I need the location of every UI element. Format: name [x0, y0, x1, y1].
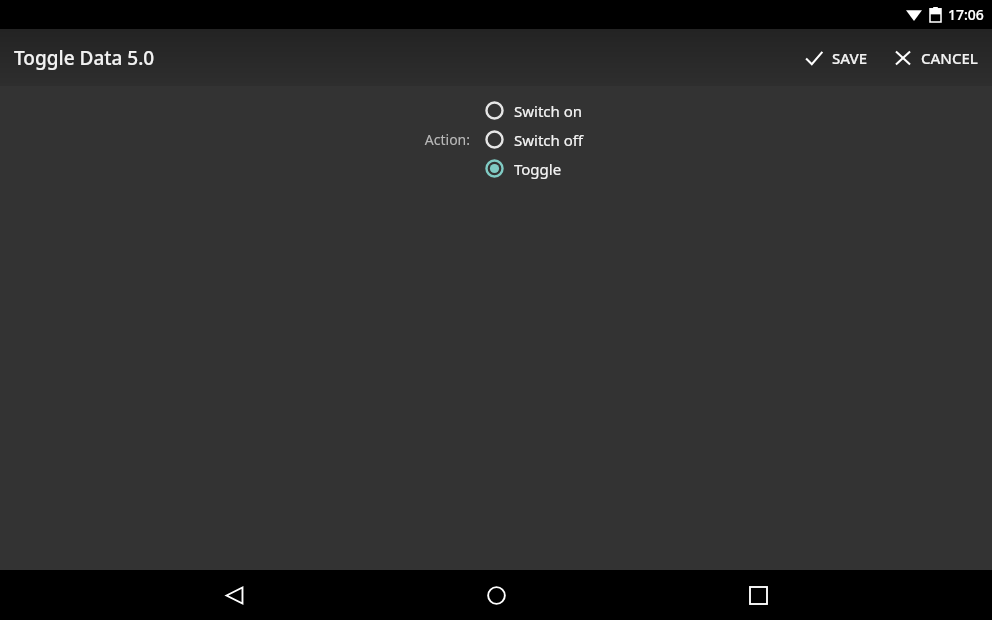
button[interactable]: Recent apps [730, 570, 786, 620]
button[interactable]: Home [468, 570, 524, 620]
button[interactable]: Switch off [482, 125, 586, 154]
staticText: 17:06 [948, 5, 984, 24]
staticText: Toggle Data 5.0 [14, 45, 155, 71]
button[interactable]: SAVE [797, 39, 874, 77]
button[interactable]: Toggle [482, 154, 564, 183]
staticText: Action: [424, 130, 470, 149]
button[interactable]: Switch on [482, 96, 585, 125]
staticText: Toggle [514, 159, 562, 179]
staticText: Switch off [514, 130, 584, 150]
staticText: Switch on [514, 101, 583, 121]
button[interactable]: Back [206, 570, 262, 620]
button[interactable]: CANCEL [886, 39, 984, 77]
staticText: CANCEL [921, 48, 978, 68]
staticText: SAVE [832, 48, 868, 68]
